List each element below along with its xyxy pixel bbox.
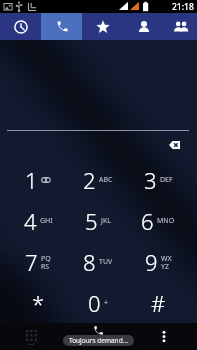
staticText: 5	[85, 206, 98, 236]
button[interactable]: Recent calls	[0, 13, 41, 40]
staticText: 21:18	[172, 1, 194, 13]
button[interactable]: 3	[128, 159, 188, 200]
staticText: TUV	[99, 257, 113, 267]
staticText: 9	[145, 247, 158, 277]
staticText: 4	[24, 206, 37, 236]
button[interactable]: *	[8, 282, 68, 323]
staticText: 0	[88, 288, 101, 318]
button[interactable]: 7	[8, 241, 68, 282]
button[interactable]: Backspace	[165, 136, 183, 154]
button[interactable]: Favourites	[82, 13, 123, 40]
staticText: +	[104, 298, 109, 308]
staticText: #	[151, 288, 166, 318]
button[interactable]: Dialer	[41, 13, 82, 40]
button[interactable]: More options	[131, 323, 197, 350]
staticText: ABC	[99, 175, 113, 185]
button[interactable]: 9	[128, 241, 188, 282]
staticText: MNO	[157, 216, 175, 226]
button[interactable]: 8	[68, 241, 128, 282]
staticText: GHI	[40, 216, 53, 226]
button[interactable]: 2	[68, 159, 128, 200]
staticText: PQ RS	[41, 254, 51, 271]
staticText: JKL	[101, 216, 111, 226]
staticText: 7	[25, 247, 38, 277]
button[interactable]: Show dialpad	[0, 323, 65, 350]
staticText: *	[32, 288, 45, 318]
staticText: 6	[141, 206, 154, 236]
staticText: 1	[25, 165, 38, 195]
button[interactable]: 4	[8, 200, 68, 241]
button[interactable]: 1	[8, 159, 68, 200]
staticText: Toujours demand…	[69, 336, 128, 345]
button[interactable]: Groups	[164, 13, 197, 40]
staticText: 8	[83, 247, 96, 277]
button[interactable]: 5	[68, 200, 128, 241]
staticText: 2	[83, 165, 96, 195]
button[interactable]: Contacts	[123, 13, 164, 40]
button[interactable]: 6	[128, 200, 188, 241]
button[interactable]: Call	[65, 323, 131, 350]
button[interactable]: #	[128, 282, 188, 323]
staticText: 3	[144, 165, 157, 195]
staticText: WX YZ	[161, 254, 172, 271]
staticText: DEF	[160, 175, 173, 185]
button[interactable]: 0	[68, 282, 128, 323]
